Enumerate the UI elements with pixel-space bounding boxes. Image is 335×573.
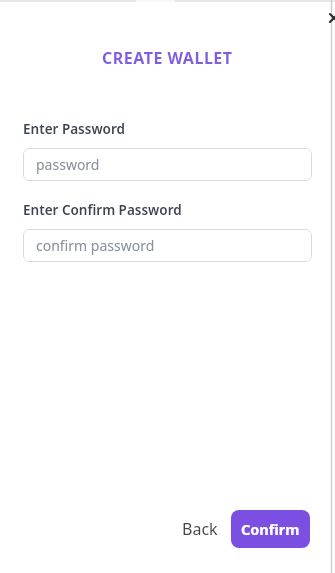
staticText: CREATE WALLET: [102, 47, 233, 67]
staticText: Enter Password: [23, 120, 125, 138]
staticText: Enter Confirm Password: [23, 201, 182, 219]
button[interactable]: Confirm: [231, 510, 310, 548]
staticText: Confirm: [241, 519, 300, 539]
staticText: Back: [182, 518, 218, 540]
button[interactable]: Back: [178, 510, 222, 548]
button[interactable]: password: [23, 148, 312, 181]
staticText: password: [36, 155, 100, 174]
staticText: confirm password: [36, 236, 155, 255]
button[interactable]: confirm password: [23, 229, 312, 262]
